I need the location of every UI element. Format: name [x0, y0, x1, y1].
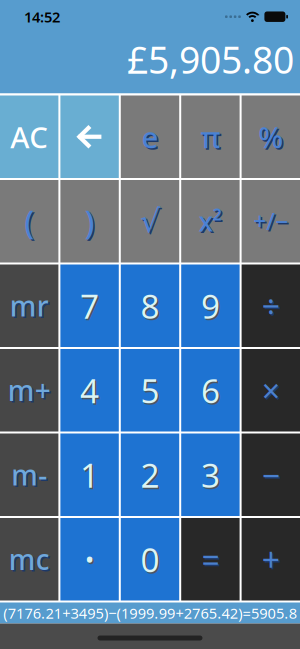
button[interactable]: %: [242, 95, 300, 178]
staticText: ×: [262, 369, 280, 411]
button[interactable]: =: [181, 518, 240, 600]
button[interactable]: .: [60, 518, 119, 600]
button[interactable]: 5: [121, 349, 179, 431]
button[interactable]: 3: [181, 433, 240, 516]
staticText: 5: [142, 370, 161, 414]
staticText: +/−: [255, 208, 290, 238]
button[interactable]: mc: [0, 518, 58, 600]
staticText: %: [258, 117, 283, 156]
staticText: m+: [9, 373, 52, 410]
button[interactable]: ): [60, 180, 119, 262]
staticText: 2: [140, 453, 159, 497]
staticText: 2: [142, 454, 161, 498]
staticText: %: [260, 119, 285, 158]
button[interactable]: 4: [60, 349, 119, 431]
button[interactable]: 1: [60, 433, 119, 516]
staticText: =: [203, 539, 221, 582]
staticText: 7: [82, 285, 101, 329]
staticText: 7: [80, 284, 99, 328]
button[interactable]: e: [121, 95, 179, 178]
button[interactable]: ×: [242, 349, 300, 431]
button[interactable]: m-: [0, 433, 58, 516]
staticText: √: [140, 203, 160, 239]
button[interactable]: 6: [181, 349, 240, 431]
staticText: AC: [10, 117, 48, 156]
staticText: mr: [11, 289, 50, 326]
staticText: ÷: [262, 284, 280, 327]
staticText: e: [143, 119, 160, 158]
button[interactable]: π: [181, 95, 240, 178]
staticText: ): [85, 200, 95, 242]
staticText: 4: [80, 368, 99, 412]
staticText: (7176.21+3495)−(1999.99+2765.42)=5905.8: [3, 603, 297, 623]
staticText: x²: [200, 205, 224, 240]
button[interactable]: 8: [121, 264, 179, 347]
staticText: 6: [202, 370, 221, 414]
staticText: +/−: [253, 206, 288, 236]
staticText: π: [200, 117, 220, 156]
staticText: £5,905.80: [127, 34, 294, 84]
staticText: √: [141, 205, 161, 241]
staticText: m-: [11, 456, 47, 493]
button[interactable]: AC: [0, 95, 58, 178]
button[interactable]: m+: [0, 349, 58, 431]
staticText: −: [262, 453, 280, 496]
staticText: x²: [198, 203, 222, 239]
staticText: .: [84, 515, 96, 575]
staticText: 0: [142, 539, 161, 583]
button[interactable]: +: [242, 518, 300, 600]
staticText: 1: [82, 454, 101, 498]
button[interactable]: x²: [181, 180, 240, 262]
staticText: 6: [201, 368, 220, 412]
staticText: ): [86, 201, 96, 244]
staticText: (: [26, 201, 36, 244]
staticText: mr: [10, 287, 49, 324]
staticText: =: [201, 538, 219, 580]
staticText: 4: [82, 370, 101, 414]
button[interactable]: Backspace: [60, 95, 119, 178]
staticText: +: [262, 538, 280, 580]
button[interactable]: +/−: [242, 180, 300, 262]
staticText: 3: [202, 454, 221, 498]
staticText: 8: [140, 284, 159, 328]
staticText: m-: [13, 458, 49, 495]
staticText: 14:52: [24, 7, 60, 26]
staticText: 8: [142, 285, 161, 329]
button[interactable]: √: [121, 180, 179, 262]
staticText: ÷: [263, 286, 281, 328]
staticText: e: [141, 117, 158, 156]
staticText: .: [85, 517, 97, 577]
staticText: 0: [140, 537, 159, 581]
staticText: (: [24, 200, 34, 242]
button[interactable]: −: [242, 433, 300, 516]
button[interactable]: 7: [60, 264, 119, 347]
staticText: 9: [201, 284, 220, 328]
staticText: 5: [140, 368, 159, 412]
staticText: +: [263, 539, 281, 582]
staticText: ×: [263, 370, 281, 413]
button[interactable]: 2: [121, 433, 179, 516]
staticText: 1: [80, 453, 99, 497]
staticText: −: [263, 455, 281, 497]
button[interactable]: 9: [181, 264, 240, 347]
button[interactable]: mr: [0, 264, 58, 347]
button[interactable]: 0: [121, 518, 179, 600]
staticText: m+: [8, 372, 51, 409]
button[interactable]: (: [0, 180, 58, 262]
staticText: mc: [9, 541, 50, 578]
staticText: mc: [10, 542, 51, 579]
staticText: 3: [201, 453, 220, 497]
staticText: 9: [202, 285, 221, 329]
staticText: π: [202, 119, 222, 158]
button[interactable]: ÷: [242, 264, 300, 347]
